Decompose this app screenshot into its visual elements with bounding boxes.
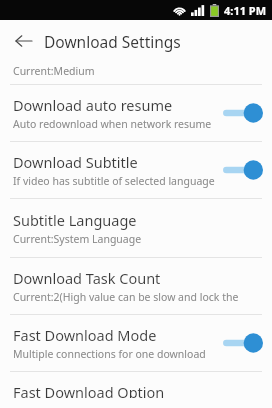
button[interactable]: Download Subtitle [0, 142, 272, 198]
button[interactable]: Download auto resume [0, 85, 272, 141]
staticText: Fast Download Mode [13, 325, 157, 345]
button[interactable]: Subtitle Language [0, 199, 272, 257]
staticText: Auto redownload when network resume [13, 117, 212, 131]
staticText: 4:11 PM [224, 3, 267, 18]
button[interactable]: Toggle [220, 159, 264, 181]
staticText: Download Settings [44, 31, 181, 52]
staticText: Current:System Language [13, 232, 142, 246]
staticText: Download Subtitle [13, 152, 138, 172]
staticText: Download Task Count [13, 268, 161, 288]
staticText: Current:2(High value can be slow and loc… [13, 290, 264, 304]
button[interactable]: Toggle [220, 102, 264, 124]
button[interactable]: Toggle [220, 332, 264, 354]
staticText: Current:Medium [13, 64, 95, 78]
staticText: Fast Download Option [13, 382, 165, 398]
button[interactable]: Download Task Count [0, 258, 272, 314]
staticText: Multiple connections for one download [13, 347, 206, 361]
staticText: If video has subtitle of selected langua… [13, 174, 215, 188]
staticText: Subtitle Language [13, 210, 137, 230]
button[interactable]: Back [6, 24, 40, 58]
button[interactable]: Fast Download Option [0, 372, 272, 408]
button[interactable]: Fast Download Mode [0, 315, 272, 371]
button[interactable]: Current:Medium [0, 62, 272, 84]
staticText: Download auto resume [13, 95, 173, 115]
